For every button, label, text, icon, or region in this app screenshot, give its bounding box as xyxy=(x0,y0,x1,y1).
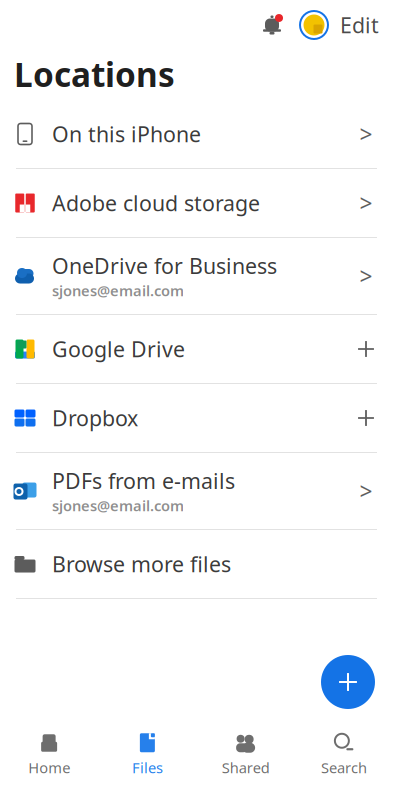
staticText: sjones@email.com xyxy=(52,496,184,515)
button[interactable]: Edit xyxy=(336,5,393,45)
staticText: Edit xyxy=(340,11,379,39)
button[interactable]: OneDrive for Business xyxy=(0,238,393,314)
button[interactable]: Search xyxy=(295,729,393,781)
button[interactable]: Files xyxy=(98,729,196,781)
button[interactable]: Notifications xyxy=(252,5,292,45)
staticText: Locations xyxy=(14,52,175,96)
staticText: Browse more files xyxy=(52,550,231,578)
staticText: OneDrive for Business xyxy=(52,252,277,280)
staticText: Files xyxy=(132,758,163,777)
staticText: PDFs from e-mails xyxy=(52,467,235,495)
staticText: > xyxy=(359,119,372,149)
staticText: > xyxy=(359,188,372,218)
staticText: Search xyxy=(321,758,367,777)
button[interactable]: Home xyxy=(0,729,98,781)
staticText: > xyxy=(359,261,372,291)
button[interactable]: Account xyxy=(292,5,336,45)
button[interactable]: Google Drive xyxy=(0,315,393,383)
button[interactable]: Dropbox xyxy=(0,384,393,452)
staticText: > xyxy=(359,476,372,506)
button[interactable]: Browse more files xyxy=(0,530,393,598)
button[interactable]: Create xyxy=(321,655,375,709)
button[interactable]: On this iPhone xyxy=(0,100,393,168)
staticText: On this iPhone xyxy=(52,120,201,148)
button[interactable]: Shared xyxy=(196,729,295,781)
staticText: Shared xyxy=(222,758,270,777)
staticText: Adobe cloud storage xyxy=(52,189,260,217)
button[interactable]: PDFs from e-mails xyxy=(0,453,393,529)
button[interactable]: Adobe cloud storage xyxy=(0,169,393,237)
staticText: sjones@email.com xyxy=(52,281,184,300)
staticText: Home xyxy=(28,758,70,777)
staticText: Google Drive xyxy=(52,335,185,363)
staticText: Dropbox xyxy=(52,404,138,432)
